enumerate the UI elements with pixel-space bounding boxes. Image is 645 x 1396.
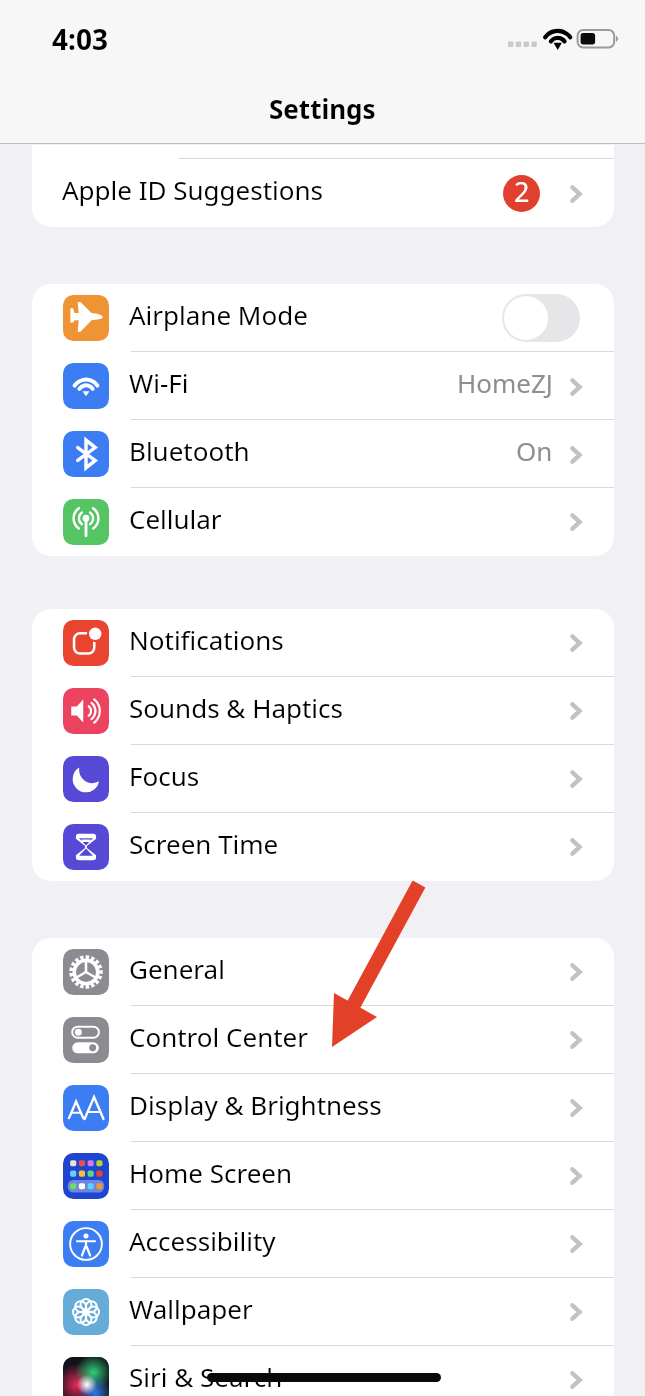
staticText: Accessibility (129, 1223, 276, 1258)
staticText: Notifications (129, 622, 284, 657)
staticText: Siri & Search (129, 1359, 283, 1394)
button[interactable]: Display & Brightness (32, 1074, 614, 1142)
staticText: Sounds & Haptics (129, 690, 344, 725)
staticText: Settings (269, 91, 376, 126)
button[interactable]: Bluetooth (32, 420, 614, 488)
button[interactable]: Wi-Fi (32, 352, 614, 420)
staticText: 4:03 (52, 20, 108, 58)
button[interactable]: Siri & Search (32, 1346, 614, 1396)
button[interactable]: Apple ID Suggestions (32, 159, 614, 227)
button[interactable]: Sounds & Haptics (32, 677, 614, 745)
staticText: Focus (129, 758, 200, 793)
button[interactable]: Control Center (32, 1006, 614, 1074)
staticText: Bluetooth (129, 433, 250, 468)
button[interactable]: Home Screen (32, 1142, 614, 1210)
staticText: HomeZJ (457, 365, 553, 400)
staticText: Airplane Mode (129, 297, 308, 332)
staticText: Control Center (129, 1019, 308, 1054)
staticText: Wi-Fi (129, 365, 189, 400)
staticText: 2 (514, 175, 530, 210)
button[interactable]: Focus (32, 745, 614, 813)
staticText: Display & Brightness (129, 1087, 382, 1122)
button[interactable]: General (32, 938, 614, 1006)
staticText: Cellular (129, 501, 222, 536)
button[interactable]: Wallpaper (32, 1278, 614, 1346)
button[interactable]: Accessibility (32, 1210, 614, 1278)
staticText: Screen Time (129, 826, 279, 861)
staticText: Apple ID Suggestions (62, 172, 324, 207)
button[interactable]: Screen Time (32, 813, 614, 881)
button[interactable]: Notifications (32, 609, 614, 677)
button[interactable]: Cellular (32, 488, 614, 556)
staticText: On (516, 433, 553, 468)
staticText: Wallpaper (129, 1291, 253, 1326)
staticText: Home Screen (129, 1155, 293, 1190)
staticText: General (129, 951, 225, 986)
button[interactable]: Airplane Mode (32, 284, 614, 352)
button[interactable]: Airplane Mode toggle (502, 294, 580, 342)
